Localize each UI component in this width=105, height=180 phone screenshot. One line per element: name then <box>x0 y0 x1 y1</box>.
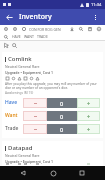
staticText: After you play this upgrade, you may mil… <box>5 82 100 90</box>
button[interactable]: Datapad <box>2 141 103 166</box>
button[interactable]: Navigate <box>3 42 10 49</box>
button[interactable]: Filter <box>3 26 9 32</box>
staticText: 0 <box>60 100 64 107</box>
button[interactable]: Decrease Trade <box>23 124 47 134</box>
staticText: CON FOR ROG GEN <box>29 27 61 32</box>
staticText: WANT <box>24 34 34 39</box>
button[interactable]: Back <box>4 12 15 23</box>
button[interactable]: Search <box>78 26 84 32</box>
button[interactable]: 0 <box>47 111 77 121</box>
button[interactable]: Search <box>11 42 18 49</box>
button[interactable]: Increase Trade <box>77 124 100 134</box>
staticText: Have <box>5 99 18 106</box>
button[interactable]: Delete <box>87 26 93 32</box>
staticText: Upgrade • Equipment, Cost 1 <box>5 159 54 164</box>
button[interactable]: Info <box>96 26 102 32</box>
staticText: 11:34 <box>91 2 102 7</box>
staticText: Datapad <box>8 144 33 152</box>
staticText: Neutral General Rare <box>5 153 40 158</box>
button[interactable]: Comlink <box>2 52 103 138</box>
button[interactable]: Home <box>47 167 59 179</box>
button[interactable]: Decrease Want <box>23 111 47 121</box>
staticText: HAVE <box>12 34 21 39</box>
button[interactable]: Circle <box>21 26 27 32</box>
button[interactable]: 0 <box>47 98 77 108</box>
button[interactable]: Sort <box>12 26 18 32</box>
button[interactable]: Tag <box>3 34 9 40</box>
staticText: 0 <box>60 126 64 133</box>
button[interactable]: 0 <box>47 124 77 134</box>
staticText: Inventory <box>19 12 52 22</box>
staticText: Upgrade • Equipment, Cost 1 <box>5 70 54 75</box>
button[interactable]: Decrease Have <box>23 98 47 108</box>
staticText: Awakenings (M 15) <box>5 91 34 95</box>
button[interactable]: Recents <box>76 167 88 179</box>
staticText: TRADE <box>37 34 48 39</box>
staticText: Comlink <box>8 55 32 63</box>
button[interactable]: More options <box>90 12 101 23</box>
button[interactable]: Increase Want <box>77 111 100 121</box>
button[interactable]: Back <box>17 167 29 179</box>
staticText: Want <box>5 112 18 119</box>
staticText: 0 <box>60 113 64 120</box>
staticText: Trade <box>5 125 19 132</box>
staticText: Neutral General Rare <box>5 64 40 69</box>
button[interactable]: Increase Have <box>77 98 100 108</box>
button[interactable]: Download <box>69 26 75 32</box>
